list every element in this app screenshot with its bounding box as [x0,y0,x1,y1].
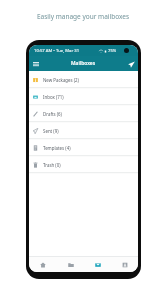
staticText: 75% [108,48,117,54]
button[interactable]: Mail [84,257,111,272]
button[interactable]: Menu [30,58,42,70]
staticText: New Packages (2) [43,77,79,83]
button[interactable]: Trash (0) [29,156,138,173]
staticText: Trash (0) [43,162,61,168]
button[interactable]: Folders [57,257,84,272]
staticText: Sent (9) [43,128,59,134]
button[interactable]: Drafts (6) [29,105,138,122]
staticText: Templates (4) [43,145,71,151]
button[interactable]: Send [125,58,137,70]
button[interactable]: New Packages (2) [29,71,138,88]
button[interactable]: Inbox (71) [29,88,138,105]
staticText: Inbox (71) [43,94,64,100]
button[interactable]: Home [29,257,57,272]
staticText: Mailboxes [71,60,96,67]
staticText: Drafts (6) [43,111,62,117]
staticText: Easily manage your mailboxes [0,12,166,21]
button[interactable]: Sent (9) [29,122,138,139]
button[interactable]: Templates (4) [29,139,138,156]
staticText: 10:57 AM • Tue, Mar 31 [34,48,80,54]
button[interactable]: Contacts [111,257,138,272]
